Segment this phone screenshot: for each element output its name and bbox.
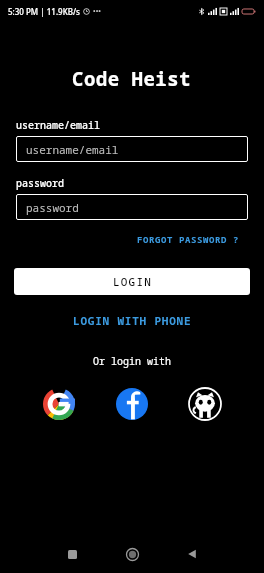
button[interactable]: username/email [16, 136, 248, 162]
staticText: password [16, 176, 64, 190]
button[interactable]: Back [178, 540, 206, 568]
staticText: ••• [93, 7, 101, 17]
button[interactable]: password [16, 194, 248, 220]
button[interactable]: Home [118, 540, 146, 568]
staticText: LOGIN WITH PHONE [73, 313, 192, 328]
button[interactable]: FORGOT PASSWORD ? [135, 230, 242, 248]
staticText: FORGOT PASSWORD ? [137, 233, 240, 245]
staticText: Or login with [93, 354, 171, 368]
staticText: password [26, 200, 79, 215]
button[interactable]: Sign in with GitHub [186, 385, 224, 423]
staticText: LOGIN [113, 274, 152, 289]
button[interactable]: Sign in with Google [40, 385, 78, 423]
staticText: username/email [16, 118, 100, 132]
staticText: username/email [26, 142, 119, 157]
button[interactable]: Recent apps [58, 540, 86, 568]
button[interactable]: Sign in with Facebook [113, 385, 151, 423]
staticText: Code Heist [72, 66, 192, 92]
button[interactable]: LOGIN [14, 268, 250, 295]
staticText: 5:30 PM | 11.9KB/s [8, 6, 80, 17]
button[interactable]: LOGIN WITH PHONE [69, 310, 196, 331]
